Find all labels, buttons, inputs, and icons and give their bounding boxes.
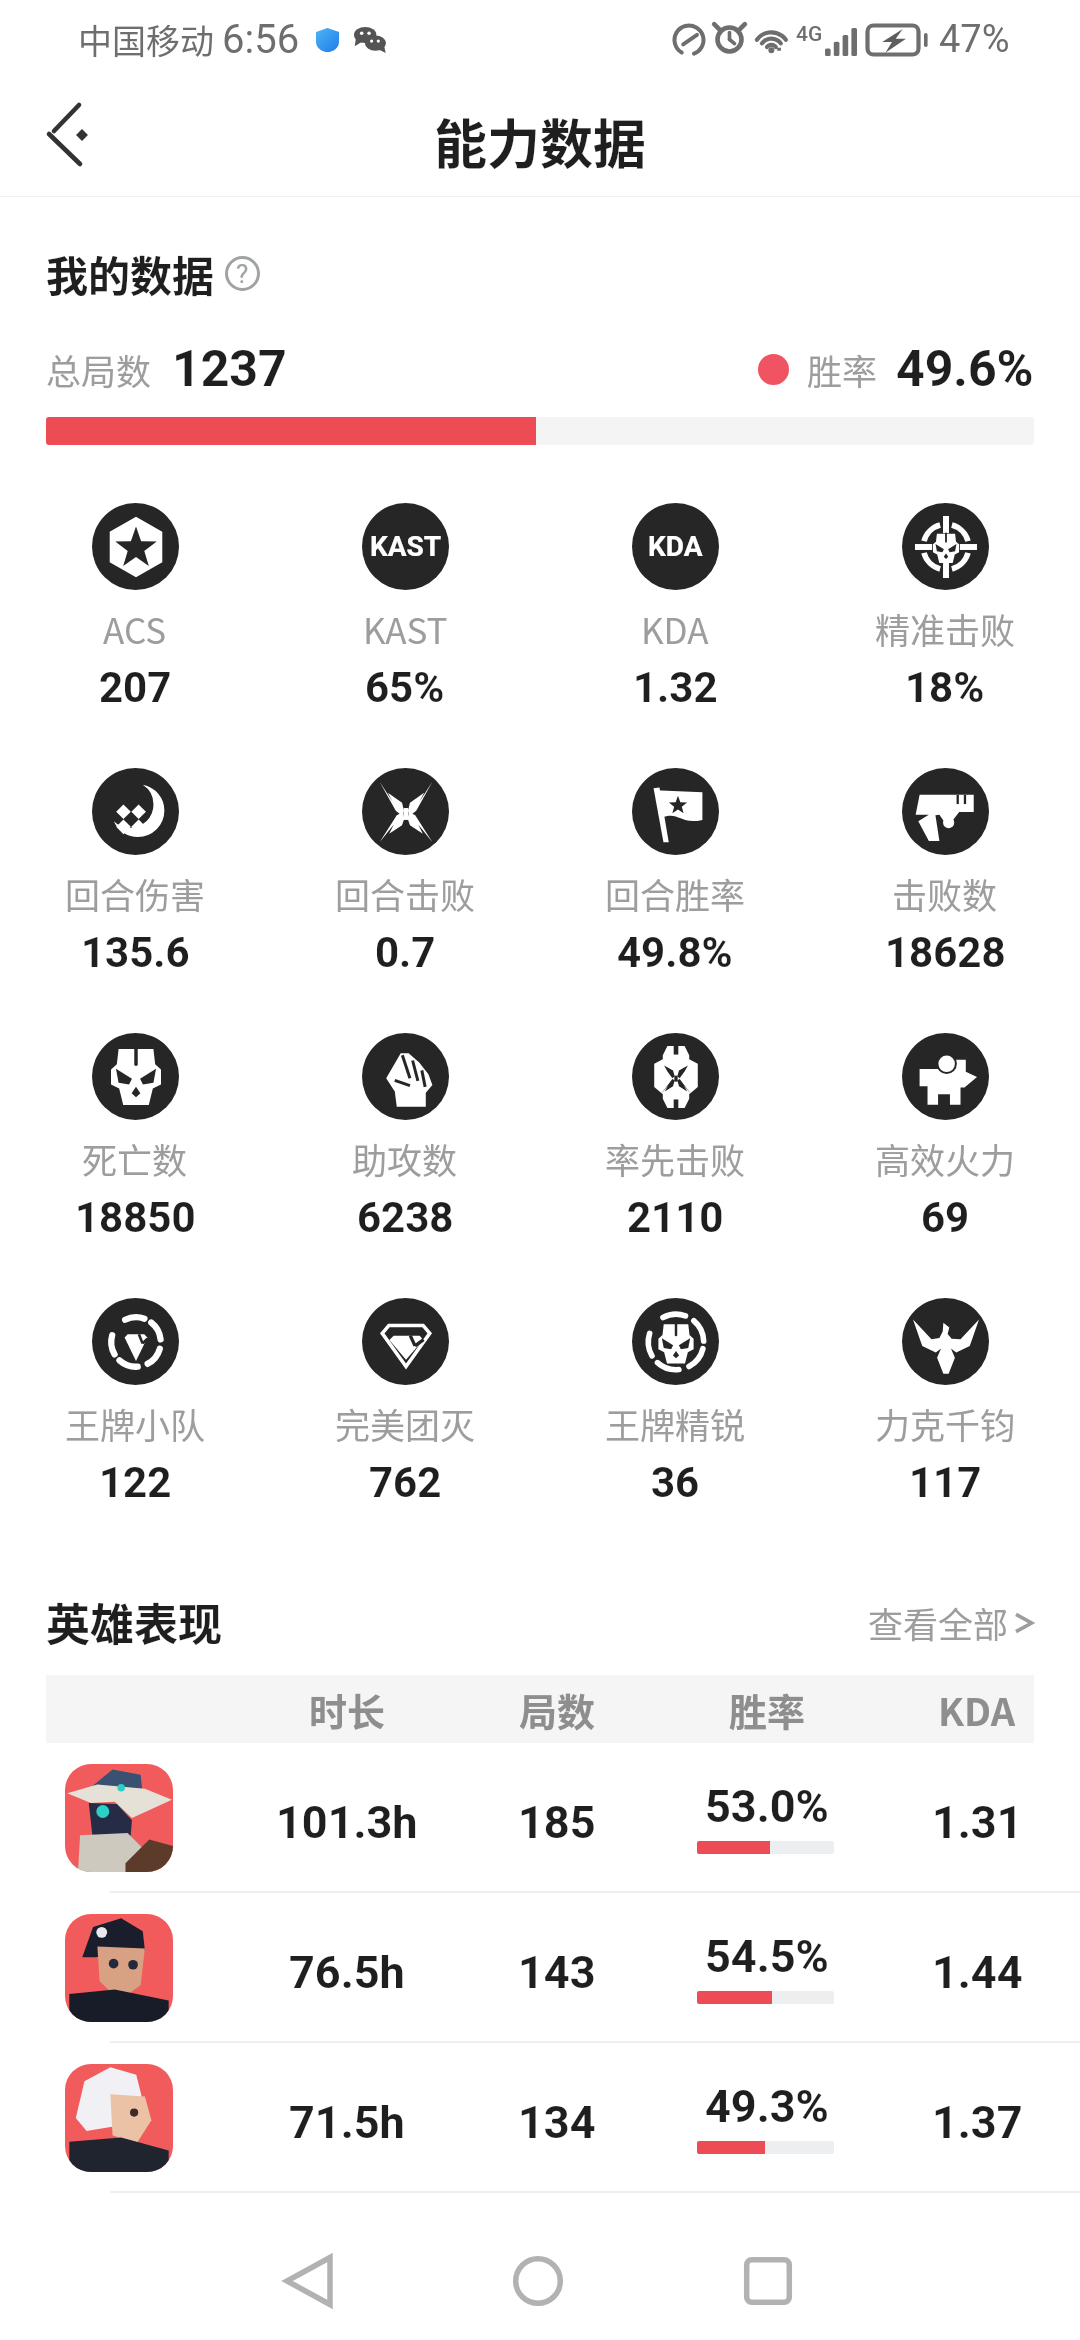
staticText: 71.5h (289, 2096, 405, 2149)
staticText: KDA (648, 530, 703, 563)
staticText: 6:56 (222, 16, 300, 63)
button[interactable]: 查看全部 (868, 1597, 1034, 1648)
button[interactable]: 回合伤害 (0, 768, 270, 977)
staticText: 死亡数 (82, 1133, 188, 1184)
staticText: 69 (921, 1193, 970, 1242)
button[interactable]: 71.5h (0, 2043, 1080, 2193)
staticText: 回合胜率 (605, 868, 746, 919)
staticText: 4G (796, 22, 823, 47)
staticText: KDA (938, 1682, 1016, 1737)
staticText: 完美团灭 (335, 1398, 476, 1449)
staticText: 49.6% (896, 340, 1034, 399)
staticText: 6238 (357, 1193, 454, 1242)
staticText: 助攻数 (352, 1133, 458, 1184)
staticText: 135.6 (81, 928, 190, 977)
staticText: 回合伤害 (65, 868, 206, 919)
staticText: 122 (99, 1458, 172, 1507)
staticText: 能力数据 (434, 103, 646, 180)
staticText: 101.3h (276, 1796, 418, 1849)
staticText: 1.31 (932, 1796, 1023, 1849)
staticText: 总局数 (46, 344, 152, 395)
staticText: 胜率 (807, 344, 878, 395)
button[interactable]: 高效火力 (810, 1033, 1080, 1242)
staticText: 18850 (75, 1193, 196, 1242)
button[interactable]: KAST (270, 503, 540, 712)
staticText: 65% (365, 663, 445, 712)
button[interactable]: 回合胜率 (540, 768, 810, 977)
button[interactable]: 101.3h (0, 1743, 1080, 1893)
staticText: 1.37 (932, 2096, 1023, 2149)
staticText: KDA (641, 603, 709, 654)
button[interactable]: 精准击败 (810, 503, 1080, 712)
staticText: 王牌精锐 (605, 1398, 746, 1449)
staticText: KAST (370, 530, 442, 563)
staticText: 王牌小队 (65, 1398, 206, 1449)
staticText: 47% (939, 17, 1010, 62)
staticText: 2110 (627, 1193, 724, 1242)
staticText: 查看全部 (868, 1597, 1009, 1648)
button[interactable]: ACS (0, 503, 270, 712)
staticText: ? (236, 259, 249, 289)
staticText: 力克千钧 (875, 1398, 1016, 1449)
staticText: 207 (99, 663, 172, 712)
button[interactable]: 76.5h (0, 1893, 1080, 2043)
button[interactable]: 力克千钧 (810, 1298, 1080, 1507)
staticText: 我的数据 (46, 243, 215, 304)
staticText: 击败数 (892, 868, 998, 919)
button[interactable]: 死亡数 (0, 1033, 270, 1242)
button[interactable]: 王牌精锐 (540, 1298, 810, 1507)
staticText: 54.5% (705, 1930, 829, 1983)
staticText: 胜率 (729, 1682, 806, 1737)
staticText: 1237 (172, 340, 287, 399)
button[interactable]: Help (225, 256, 260, 291)
staticText: 49.8% (617, 928, 733, 977)
staticText: 143 (518, 1946, 596, 1999)
staticText: 局数 (519, 1682, 596, 1737)
staticText: 时长 (309, 1682, 386, 1737)
button[interactable]: 助攻数 (270, 1033, 540, 1242)
staticText: 回合击败 (335, 868, 476, 919)
button[interactable]: KDA (540, 503, 810, 712)
staticText: KAST (363, 603, 448, 654)
staticText: 中国移动 (78, 15, 214, 64)
button[interactable]: 王牌小队 (0, 1298, 270, 1507)
button[interactable]: Home (473, 2216, 603, 2340)
staticText: 高效火力 (875, 1133, 1016, 1184)
button[interactable]: 击败数 (810, 768, 1080, 977)
button[interactable]: 完美团灭 (270, 1298, 540, 1507)
staticText: 1.32 (633, 663, 718, 712)
staticText: 36 (651, 1458, 700, 1507)
staticText: ACS (103, 603, 167, 654)
button[interactable]: 回合击败 (270, 768, 540, 977)
button[interactable]: Recents (703, 2216, 833, 2340)
staticText: 英雄表现 (46, 1590, 222, 1654)
staticText: 762 (369, 1458, 442, 1507)
staticText: 18628 (885, 928, 1006, 977)
staticText: 53.0% (705, 1780, 829, 1833)
staticText: 精准击败 (875, 603, 1016, 654)
staticText: 117 (909, 1458, 982, 1507)
staticText: 1.44 (932, 1946, 1023, 1999)
button[interactable]: Back (244, 2216, 374, 2340)
staticText: 率先击败 (605, 1133, 746, 1184)
staticText: 185 (518, 1796, 596, 1849)
staticText: 18% (905, 663, 985, 712)
button[interactable]: Back (10, 80, 120, 190)
staticText: 76.5h (289, 1946, 405, 1999)
staticText: 0.7 (375, 928, 436, 977)
button[interactable]: 率先击败 (540, 1033, 810, 1242)
staticText: 49.3% (705, 2080, 829, 2133)
staticText: 134 (518, 2096, 596, 2149)
